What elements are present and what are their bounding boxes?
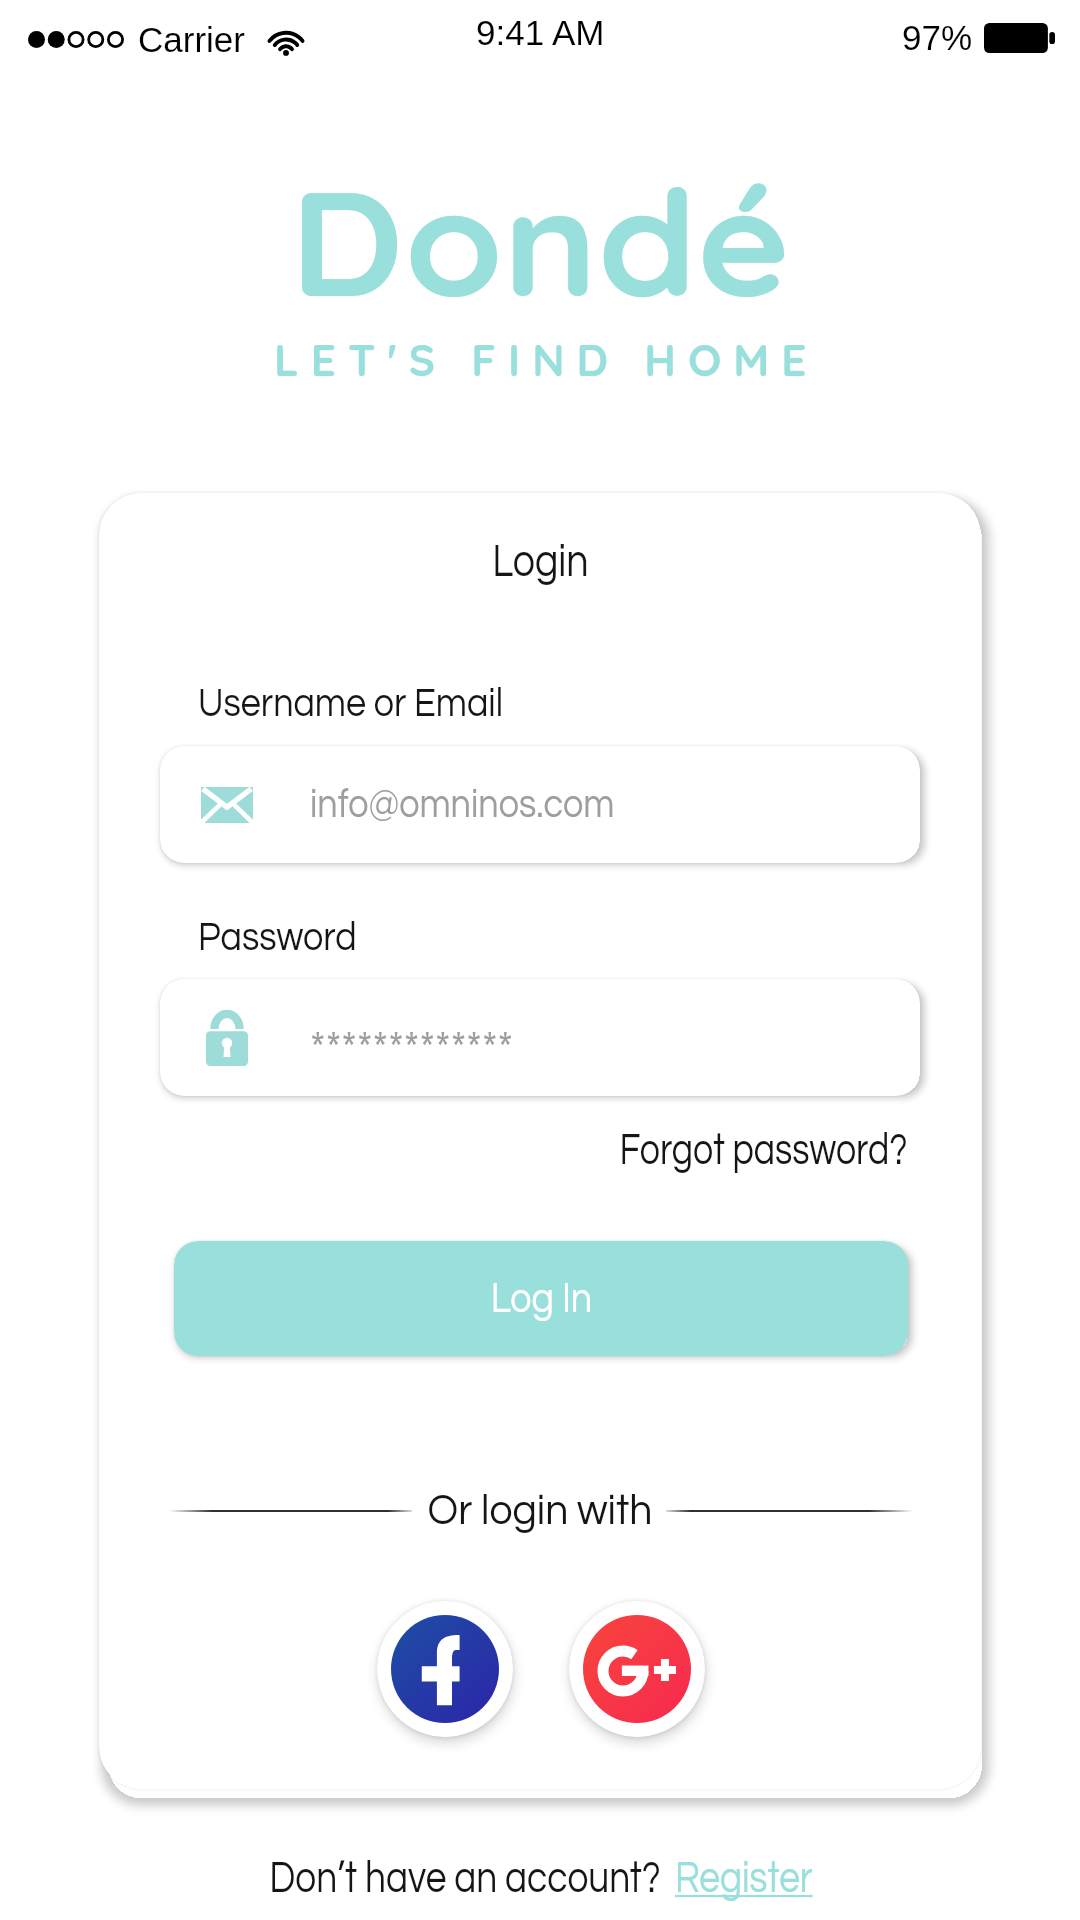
staticText: Username or Email xyxy=(198,682,503,725)
button[interactable]: Password xyxy=(160,979,920,1096)
other: Password xyxy=(206,1010,248,1066)
staticText: Carrier xyxy=(138,20,245,59)
button[interactable]: Log in with Facebook xyxy=(369,1593,521,1745)
staticText: Or login with xyxy=(427,1488,653,1533)
button[interactable]: Log in with Google Plus xyxy=(561,1593,713,1745)
staticText: LET'S FIND HOME xyxy=(274,332,819,387)
button[interactable]: Forgot password? xyxy=(519,1112,908,1188)
staticText: ************* xyxy=(310,1025,513,1075)
staticText: Dondé xyxy=(290,149,791,332)
staticText: 9:41 AM xyxy=(476,13,605,52)
button[interactable]: Register xyxy=(675,1855,843,1901)
button[interactable]: Email xyxy=(160,746,920,863)
staticText: Log In xyxy=(491,1276,592,1321)
staticText: info@omninos.com xyxy=(310,783,615,826)
staticText: Don’t have an account? xyxy=(269,1855,661,1901)
staticText: Password xyxy=(198,916,357,959)
button[interactable]: Log In xyxy=(174,1241,908,1356)
staticText: Forgot password? xyxy=(619,1127,908,1173)
staticText: 97% xyxy=(902,18,973,57)
staticText: Login xyxy=(492,538,589,585)
other: Email xyxy=(201,787,253,823)
